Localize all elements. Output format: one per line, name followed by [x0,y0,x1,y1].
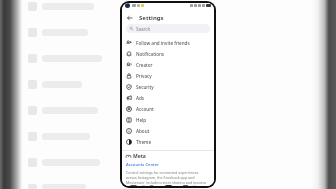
button[interactable]: Search [126,24,210,33]
button[interactable]: Accounts Center [126,162,159,168]
button[interactable]: About [122,125,214,136]
staticText: Meta [133,153,146,160]
staticText: Privacy [136,73,152,79]
button[interactable]: Notifications [122,48,214,59]
staticText: Settings [139,14,164,22]
staticText: Security [136,84,154,90]
button[interactable]: Account [122,103,214,114]
button[interactable]: Privacy [122,70,214,81]
button[interactable]: Back [126,14,134,22]
staticText: Search [136,26,151,32]
staticText: About [136,128,150,134]
staticText: Accounts Center [126,162,159,168]
button[interactable]: Security [122,81,214,92]
staticText: Theme [136,139,152,145]
staticText: Help [136,117,147,123]
staticText: Notifications [136,51,165,57]
staticText: Account [136,106,154,112]
staticText: Creator [136,62,153,68]
staticText: Control settings for connected experienc… [126,170,210,184]
button[interactable]: Follow and invite friends [122,37,214,48]
button[interactable]: Creator [122,59,214,70]
button[interactable]: Theme [122,136,214,147]
button[interactable]: Ads [122,92,214,103]
staticText: Ads [136,95,145,101]
button[interactable]: Help [122,114,214,125]
staticText: Follow and invite friends [136,40,190,46]
